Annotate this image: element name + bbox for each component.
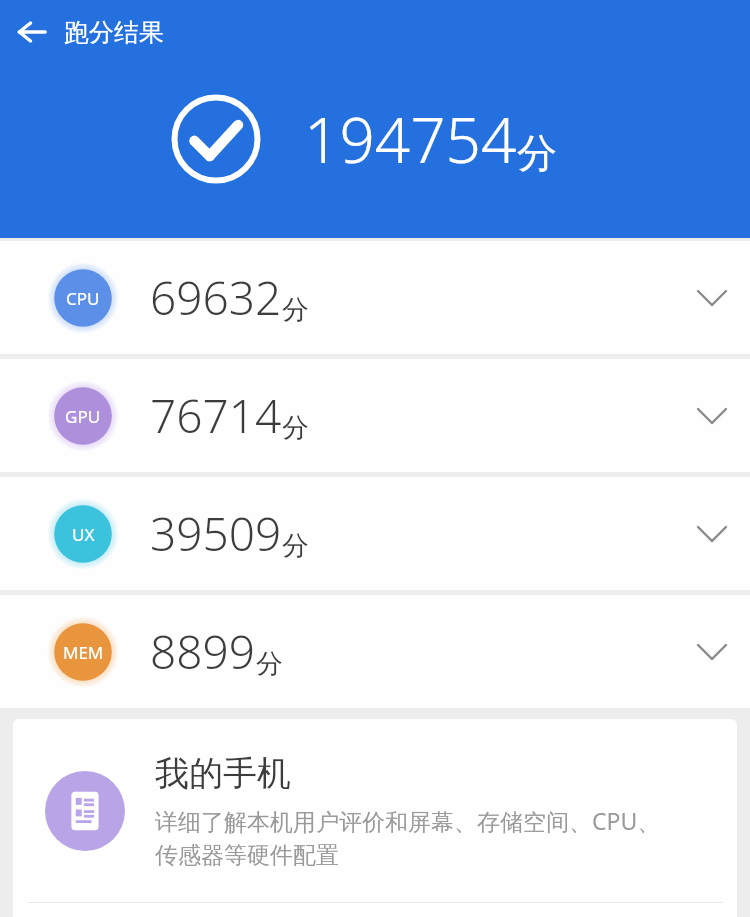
staticText: 76714 [150, 384, 282, 447]
staticText: GPU [65, 405, 101, 428]
staticText: MEM [63, 641, 104, 664]
staticText: 分 [282, 293, 309, 327]
button[interactable]: CPU [0, 241, 750, 354]
button[interactable]: GPU [0, 359, 750, 472]
button[interactable]: 我的手机 [13, 719, 737, 917]
staticText: 详细了解本机用户评价和屏幕、存储空间、CPU、 传感器等硬件配置 [155, 805, 661, 869]
button[interactable]: UX [0, 477, 750, 590]
staticText: 8899 [150, 620, 256, 683]
staticText: 69632 [150, 266, 282, 329]
staticText: 分 [282, 529, 309, 563]
staticText: 分 [256, 647, 283, 681]
staticText: 我的手机 [155, 752, 291, 795]
button[interactable]: Back [0, 0, 64, 64]
staticText: 194754 [304, 97, 517, 181]
staticText: CPU [66, 287, 100, 310]
staticText: UX [72, 523, 95, 546]
staticText: 39509 [150, 502, 282, 565]
staticText: 分 [282, 411, 309, 445]
button[interactable]: MEM [0, 595, 750, 708]
staticText: 分 [517, 128, 557, 178]
staticText: 跑分结果 [64, 17, 164, 48]
